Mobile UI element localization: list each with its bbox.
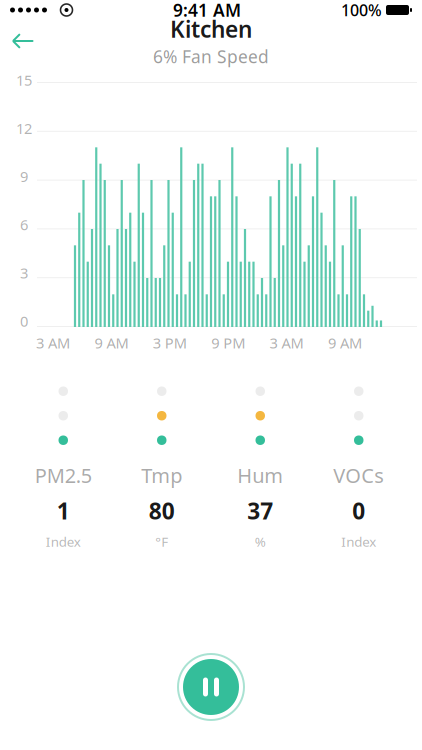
staticText: Index bbox=[46, 533, 81, 550]
staticText: Index bbox=[341, 533, 376, 550]
staticText: 6 bbox=[20, 215, 28, 234]
staticText: 6% Fan Speed bbox=[153, 45, 269, 68]
staticText: 3 AM bbox=[36, 333, 70, 352]
button[interactable]: PM2.5 bbox=[14, 386, 112, 550]
staticText: 37 bbox=[247, 495, 273, 526]
staticText: 3 PM bbox=[153, 333, 187, 352]
staticText: VOCs bbox=[333, 462, 384, 489]
staticText: 9 AM bbox=[94, 333, 128, 352]
staticText: 12 bbox=[16, 118, 32, 138]
staticText: 9 AM bbox=[328, 333, 362, 352]
staticText: 1 bbox=[57, 495, 70, 526]
staticText: °F bbox=[155, 533, 168, 550]
staticText: 9 PM bbox=[211, 333, 245, 352]
staticText: PM2.5 bbox=[35, 462, 92, 489]
button[interactable]: Pause bbox=[175, 651, 247, 723]
button[interactable]: VOCs bbox=[309, 386, 408, 550]
staticText: 9 bbox=[20, 167, 28, 186]
staticText: 0 bbox=[20, 311, 28, 331]
staticText: 100% bbox=[341, 0, 382, 21]
button[interactable]: Hum bbox=[211, 386, 309, 550]
staticText: 80 bbox=[149, 495, 175, 526]
button[interactable]: Back bbox=[0, 21, 46, 61]
staticText: 0 bbox=[352, 495, 365, 526]
staticText: Hum bbox=[237, 462, 283, 489]
staticText: 3 AM bbox=[270, 333, 304, 352]
staticText: Tmp bbox=[141, 462, 182, 489]
staticText: 3 bbox=[20, 263, 28, 283]
staticText: Kitchen bbox=[170, 14, 252, 44]
staticText: 15 bbox=[16, 70, 32, 90]
staticText: 9:41 AM bbox=[173, 0, 241, 21]
staticText: % bbox=[255, 533, 266, 550]
button[interactable]: Tmp bbox=[112, 386, 211, 550]
